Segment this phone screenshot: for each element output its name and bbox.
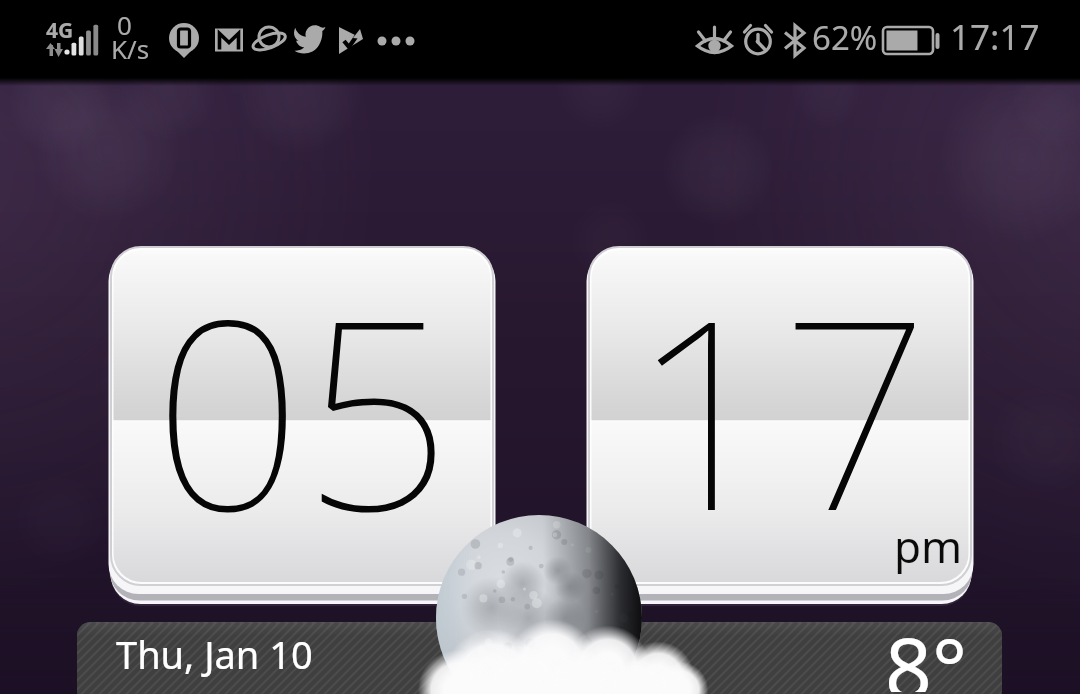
staticText: 8° — [885, 622, 968, 692]
button[interactable]: Weather, Thu Jan 10, 8 degrees — [77, 622, 1002, 694]
staticText: 4G — [46, 16, 74, 45]
staticText: pm — [894, 516, 963, 576]
other: Weather: cloudy night — [0, 0, 1080, 694]
staticText: 62% — [812, 15, 878, 60]
staticText: 17 — [631, 230, 930, 587]
button[interactable]: Minute 17 pm — [584, 247, 976, 606]
staticText: K/s — [111, 31, 150, 66]
staticText: 0 — [117, 7, 132, 42]
staticText: 17:17 — [950, 13, 1040, 61]
staticText: Thu, Jan 10 — [116, 628, 313, 680]
button[interactable]: Hour 05 — [106, 247, 498, 606]
staticText: 05 — [153, 230, 452, 587]
